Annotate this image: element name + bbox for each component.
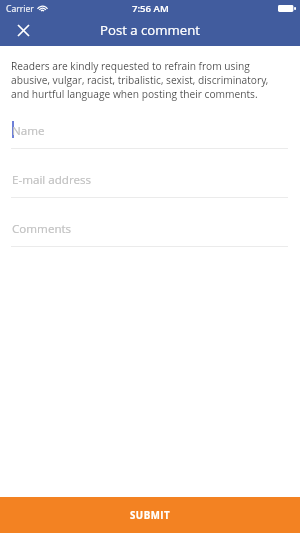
button[interactable]: Close: [8, 15, 38, 45]
staticText: Carrier: [6, 3, 34, 15]
button[interactable]: SUBMIT: [0, 497, 300, 533]
staticText: Readers are kindly requested to refrain …: [11, 59, 281, 101]
staticText: 7:56 AM: [132, 2, 169, 15]
button[interactable]: Comments: [11, 208, 288, 247]
staticText: Name: [12, 123, 45, 139]
button[interactable]: Name: [11, 110, 288, 149]
staticText: E-mail address: [12, 172, 92, 188]
button[interactable]: E-mail address: [11, 159, 288, 198]
staticText: Post a comment: [100, 21, 200, 39]
staticText: SUBMIT: [130, 509, 171, 522]
staticText: Comments: [12, 221, 72, 237]
